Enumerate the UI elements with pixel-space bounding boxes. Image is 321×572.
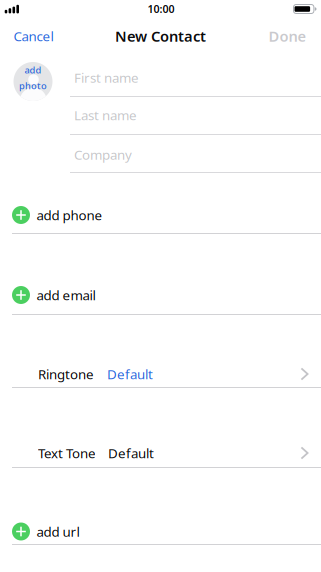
button[interactable]: Text Tone bbox=[0, 435, 321, 471]
staticText: New Contact bbox=[115, 26, 206, 46]
staticText: Cancel bbox=[13, 27, 53, 45]
staticText: Default bbox=[107, 365, 153, 383]
button[interactable]: add email bbox=[0, 277, 321, 313]
button[interactable]: Cancel bbox=[13, 27, 77, 45]
button[interactable]: add phone bbox=[0, 197, 321, 233]
staticText: Last name bbox=[74, 106, 137, 124]
staticText: add url bbox=[36, 523, 79, 540]
staticText: First name bbox=[74, 69, 139, 86]
staticText: add email bbox=[36, 286, 95, 304]
staticText: 10:00 bbox=[147, 2, 174, 16]
staticText: Company bbox=[74, 146, 132, 163]
staticText: Done bbox=[268, 26, 306, 46]
button[interactable]: First name bbox=[0, 59, 321, 96]
staticText: add bbox=[24, 64, 41, 76]
staticText: Default bbox=[108, 444, 154, 462]
staticText: Ringtone bbox=[38, 365, 94, 383]
staticText: Text Tone bbox=[38, 444, 96, 462]
button[interactable]: Last name bbox=[0, 96, 321, 133]
staticText: add phone bbox=[36, 206, 102, 224]
button[interactable]: Done bbox=[242, 26, 306, 46]
button[interactable]: Company bbox=[0, 136, 321, 173]
button[interactable]: Ringtone bbox=[0, 356, 321, 392]
button[interactable]: add photo bbox=[13, 62, 52, 101]
button[interactable]: add url bbox=[0, 513, 321, 549]
staticText: photo bbox=[19, 79, 47, 92]
